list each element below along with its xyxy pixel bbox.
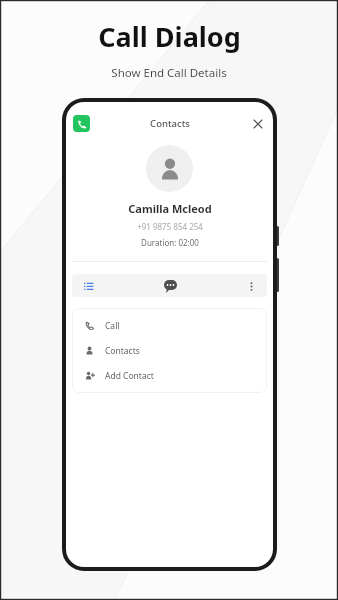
staticText: Duration: 02:00 <box>141 237 199 248</box>
button[interactable]: Message <box>162 278 178 294</box>
button[interactable]: Call app <box>73 115 90 132</box>
staticText: Call <box>105 320 120 332</box>
staticText: Add Contact <box>105 370 154 382</box>
staticText: Call Dialog <box>98 18 241 55</box>
staticText: Contacts <box>105 345 140 357</box>
button[interactable]: Close <box>249 115 266 132</box>
button[interactable]: More options <box>244 279 258 293</box>
button[interactable]: Add Contact <box>72 363 267 388</box>
button[interactable]: Contacts <box>72 338 267 363</box>
button[interactable]: List <box>81 279 95 293</box>
staticText: +91 9875 854 254 <box>137 221 203 232</box>
button[interactable]: Call <box>72 313 267 338</box>
staticText: Show End Call Details <box>111 65 227 81</box>
staticText: Camilla Mcleod <box>128 201 212 216</box>
staticText: Contacts <box>150 117 190 130</box>
